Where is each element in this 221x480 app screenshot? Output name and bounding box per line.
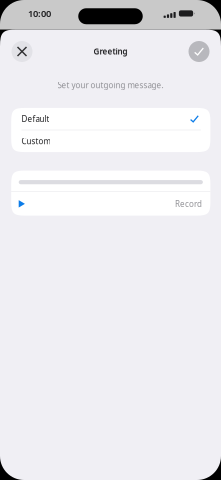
button[interactable]: Close xyxy=(11,41,32,62)
button[interactable]: Default xyxy=(11,108,210,130)
button[interactable]: Record xyxy=(11,192,210,216)
staticText: Set your outgoing message. xyxy=(57,80,163,90)
button[interactable]: Save xyxy=(188,41,209,62)
button[interactable]: Custom xyxy=(11,130,210,152)
staticText: Record xyxy=(175,198,202,209)
staticText: Default xyxy=(21,113,49,124)
staticText: 10:00 xyxy=(28,7,51,20)
staticText: Greeting xyxy=(93,46,127,57)
staticText: Custom xyxy=(21,136,50,146)
